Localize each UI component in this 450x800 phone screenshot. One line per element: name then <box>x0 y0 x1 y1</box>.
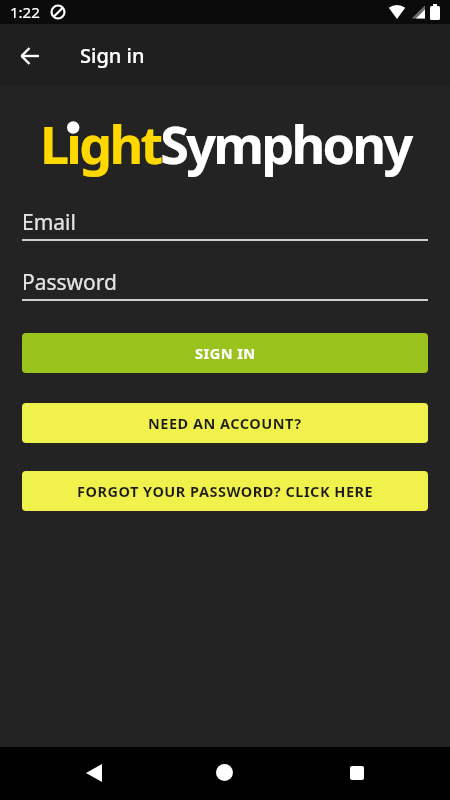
staticText: NEED AN ACCOUNT? <box>148 413 302 433</box>
button[interactable] <box>0 28 56 84</box>
staticText: Email <box>22 208 76 237</box>
button[interactable]: NEED AN ACCOUNT? <box>22 403 428 443</box>
staticText: 1:22 <box>10 2 40 22</box>
button[interactable] <box>201 749 249 797</box>
button[interactable] <box>70 749 118 797</box>
button[interactable]: SIGN IN <box>22 333 428 373</box>
staticText: SIGN IN <box>195 343 256 363</box>
staticText: Password <box>22 268 117 297</box>
button[interactable] <box>330 749 378 797</box>
button[interactable]: FORGOT YOUR PASSWORD? CLICK HERE <box>22 471 428 511</box>
staticText: FORGOT YOUR PASSWORD? CLICK HERE <box>77 481 374 501</box>
staticText: LightSymphony <box>40 108 411 179</box>
staticText: Sign in <box>80 42 145 69</box>
